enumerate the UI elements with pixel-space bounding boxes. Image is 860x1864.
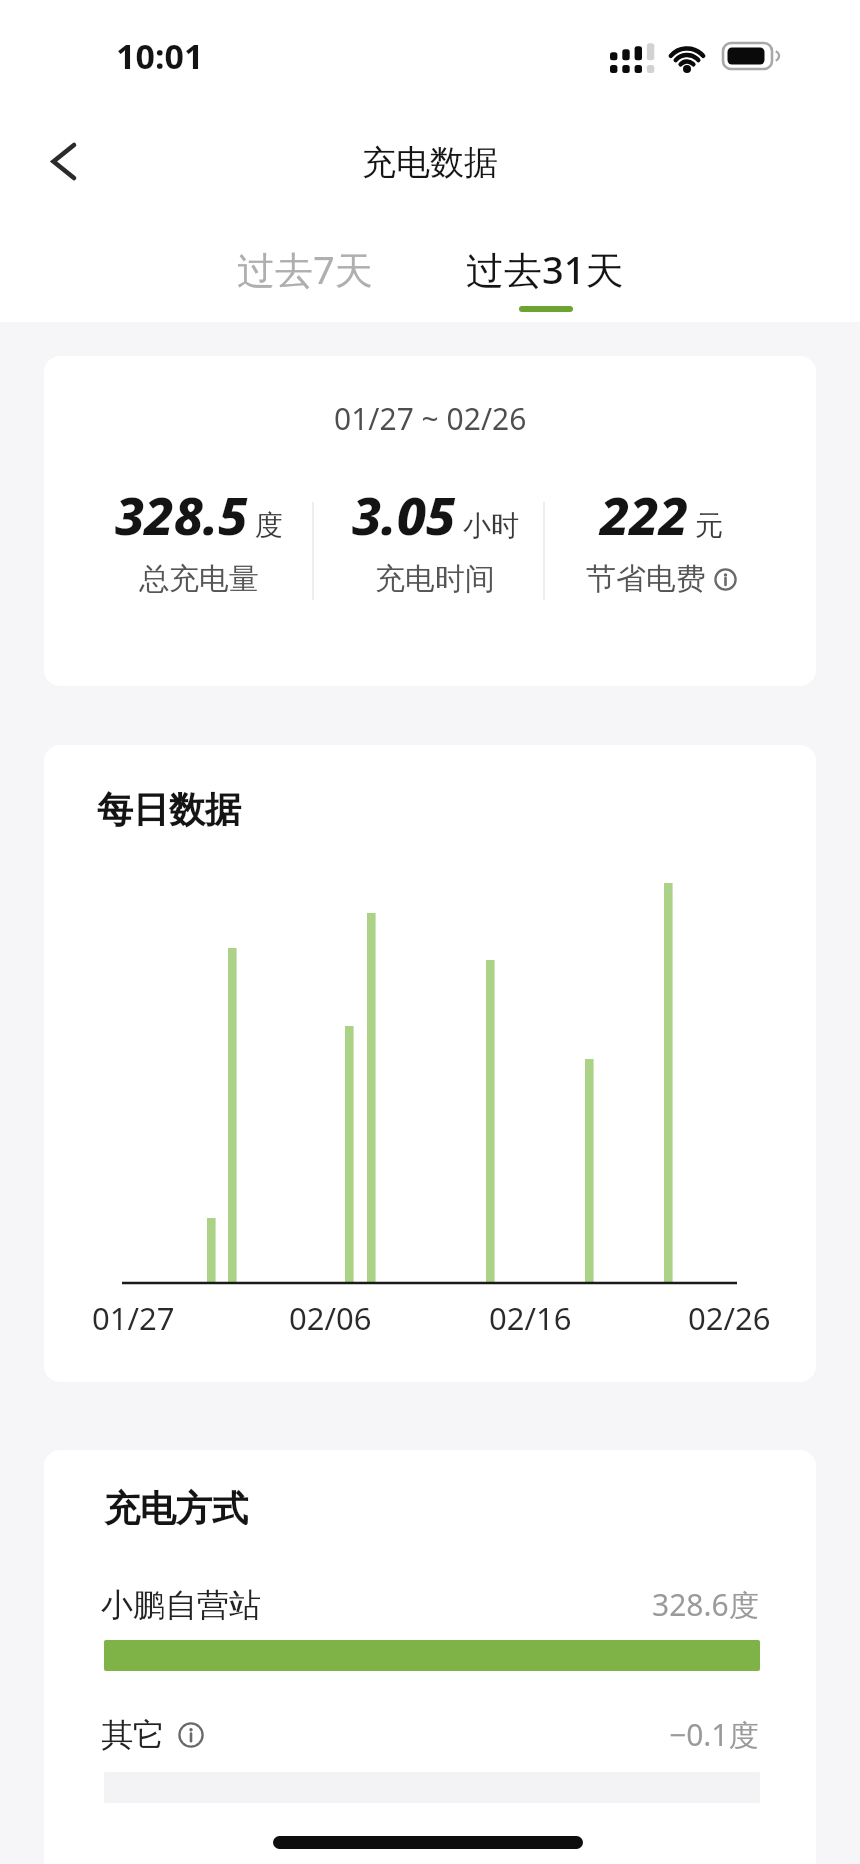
button[interactable]: 3.05	[305, 479, 565, 550]
staticText: 每日数据	[97, 787, 241, 832]
staticText: 小时	[463, 508, 519, 543]
staticText: 328.5	[115, 479, 248, 550]
staticText: 小鹏自营站	[101, 1585, 261, 1625]
staticText: −0.1度	[669, 1714, 759, 1755]
staticText: 元	[695, 508, 723, 543]
staticText: 总充电量	[139, 560, 259, 598]
button[interactable]: 222	[531, 479, 791, 550]
button[interactable]: 328.5	[69, 479, 329, 550]
button[interactable]	[40, 134, 88, 190]
button[interactable]: 小鹏自营站	[101, 1584, 759, 1625]
button[interactable]: 过去31天	[425, 238, 665, 300]
staticText: 充电数据	[362, 141, 498, 184]
staticText: 328.6度	[652, 1584, 759, 1625]
staticText: 过去7天	[237, 243, 373, 295]
button[interactable]: 其它	[101, 1714, 759, 1755]
staticText: 01/27	[92, 1297, 175, 1339]
staticText: 02/16	[489, 1297, 572, 1339]
staticText: 02/06	[289, 1297, 372, 1339]
staticText: 过去31天	[466, 243, 624, 295]
staticText: 01/27 ~ 02/26	[334, 398, 527, 439]
staticText: 度	[255, 508, 283, 543]
button[interactable]: 过去7天	[185, 238, 425, 300]
staticText: 10:01	[116, 33, 204, 79]
staticText: 节省电费	[586, 560, 706, 598]
staticText: 充电方式	[104, 1486, 248, 1531]
staticText: 充电时间	[375, 560, 495, 598]
staticText: 其它	[101, 1715, 165, 1755]
staticText: 02/26	[688, 1297, 771, 1339]
staticText: 3.05	[352, 479, 456, 550]
staticText: 222	[600, 479, 688, 550]
